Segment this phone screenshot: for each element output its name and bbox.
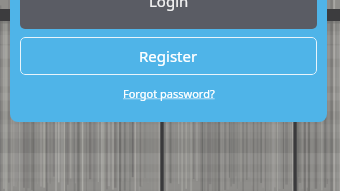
button[interactable]: Forgot password? [20,80,317,106]
staticText: Login [149,0,189,11]
button[interactable]: Register [20,37,317,75]
button[interactable]: Login [20,0,317,29]
staticText: Register [139,46,198,66]
staticText: Forgot password? [123,86,215,101]
